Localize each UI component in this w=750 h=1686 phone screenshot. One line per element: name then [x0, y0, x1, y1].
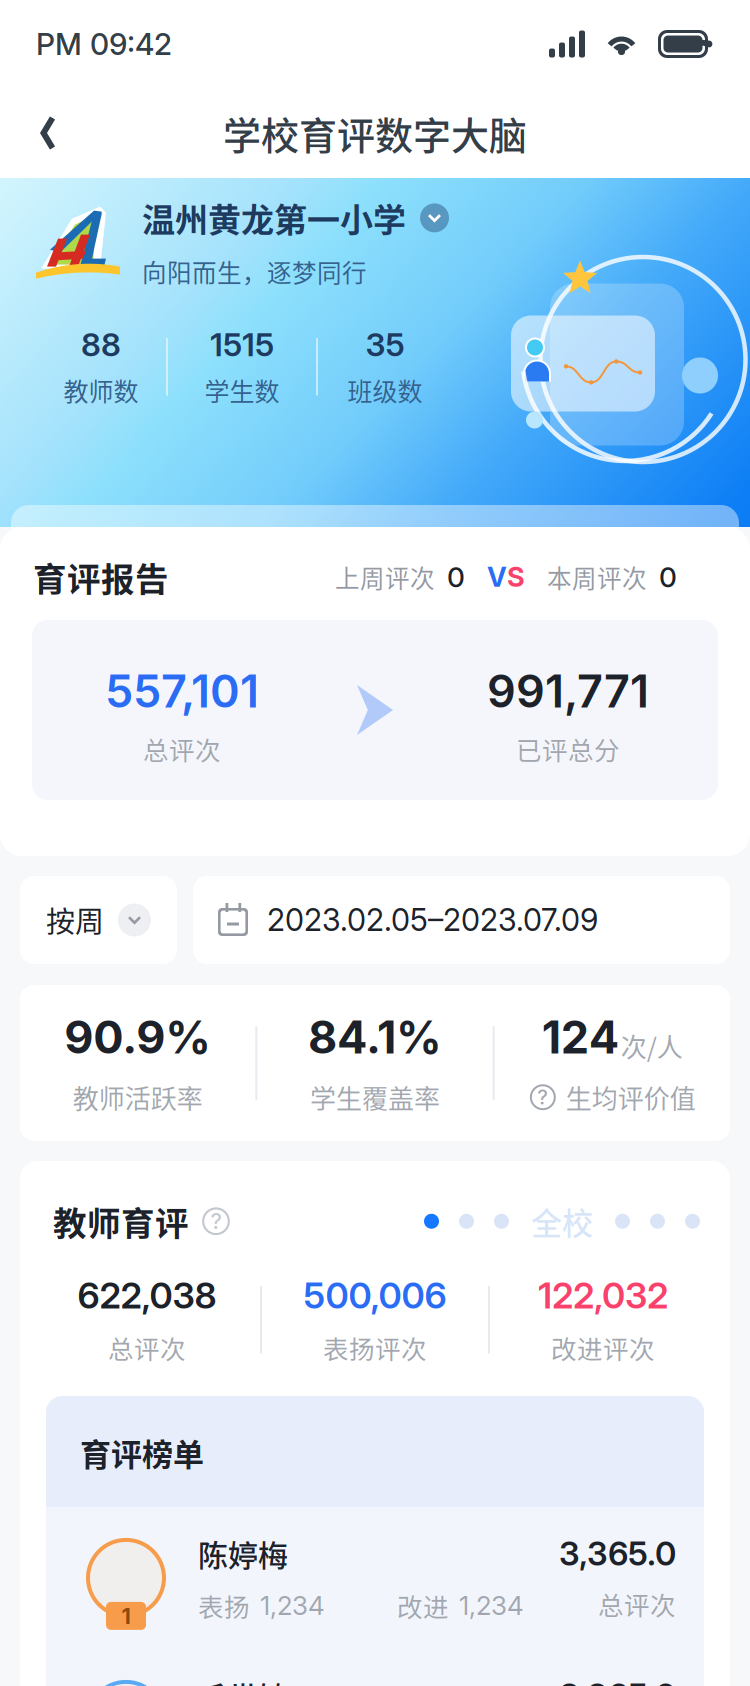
button[interactable]: 2023.02.05–2023.07.09 [193, 876, 730, 964]
staticText: 教师活跃率 [73, 1078, 203, 1116]
button[interactable]: 1 [46, 1507, 704, 1649]
staticText: 已评总分 [516, 730, 620, 767]
staticText: 表扬评次 [323, 1329, 427, 1366]
staticText: 84.1% [308, 1010, 442, 1064]
staticText: 1,234 [260, 1590, 325, 1621]
staticText: 1 [121, 1603, 130, 1629]
staticText: 温州黄龙第一小学 [142, 194, 406, 242]
staticText: 总评次 [598, 1585, 676, 1622]
staticText: 教师育评 [53, 1197, 189, 1245]
staticText: 88 [81, 325, 121, 364]
staticText: 改进评次 [551, 1329, 655, 1366]
staticText: 班级数 [347, 372, 422, 408]
button[interactable]: 切换学校 [420, 203, 449, 232]
staticText: 毛世敏 [198, 1674, 288, 1686]
staticText: V [487, 561, 507, 593]
staticText: 622,038 [77, 1273, 216, 1317]
staticText: 1,234 [459, 1590, 524, 1621]
staticText: 学生覆盖率 [310, 1078, 440, 1116]
staticText: 按周 [46, 899, 104, 941]
staticText: 表扬 [198, 1587, 250, 1624]
staticText: 557,101 [105, 664, 259, 718]
staticText: 次/人 [621, 1027, 683, 1064]
staticText: 学生数 [204, 372, 279, 408]
staticText: 90.9% [64, 1010, 211, 1064]
staticText: 总评次 [108, 1329, 186, 1366]
staticText: S [507, 561, 525, 593]
staticText: 育评榜单 [80, 1430, 204, 1475]
staticText: 500,006 [303, 1273, 446, 1317]
button[interactable]: 毛世敏 [46, 1649, 704, 1686]
staticText: 向阳而生，逐梦同行 [142, 254, 367, 289]
staticText: PM 09:42 [36, 26, 172, 62]
staticText: 1515 [210, 325, 274, 364]
staticText: 2023.02.05–2023.07.09 [267, 901, 598, 938]
staticText: 本周评次 [547, 559, 647, 595]
staticText: 总评次 [143, 730, 221, 767]
staticText: 3,365.0 [559, 1675, 676, 1686]
staticText: 全校 [531, 1199, 593, 1244]
staticText: ? [537, 1085, 548, 1109]
staticText: 学校育评数字大脑 [223, 105, 527, 160]
staticText: 35 [365, 325, 404, 364]
staticText: 陈婷梅 [198, 1532, 288, 1575]
staticText: 3,365.0 [559, 1533, 676, 1573]
staticText: 991,771 [487, 664, 649, 718]
staticText: 改进 [397, 1587, 449, 1624]
staticText: 上周评次 [335, 559, 435, 595]
staticText: 生均评价值 [566, 1078, 696, 1116]
staticText: 育评报告 [33, 553, 169, 601]
button[interactable]: 按周 [20, 876, 177, 964]
staticText: 0 [659, 560, 677, 594]
staticText: 122,032 [538, 1273, 668, 1317]
staticText: 教师数 [63, 372, 138, 408]
staticText: 124 [542, 1010, 619, 1064]
staticText: 0 [447, 560, 465, 594]
button[interactable]: 返回 [0, 97, 84, 169]
staticText: ? [210, 1208, 221, 1234]
